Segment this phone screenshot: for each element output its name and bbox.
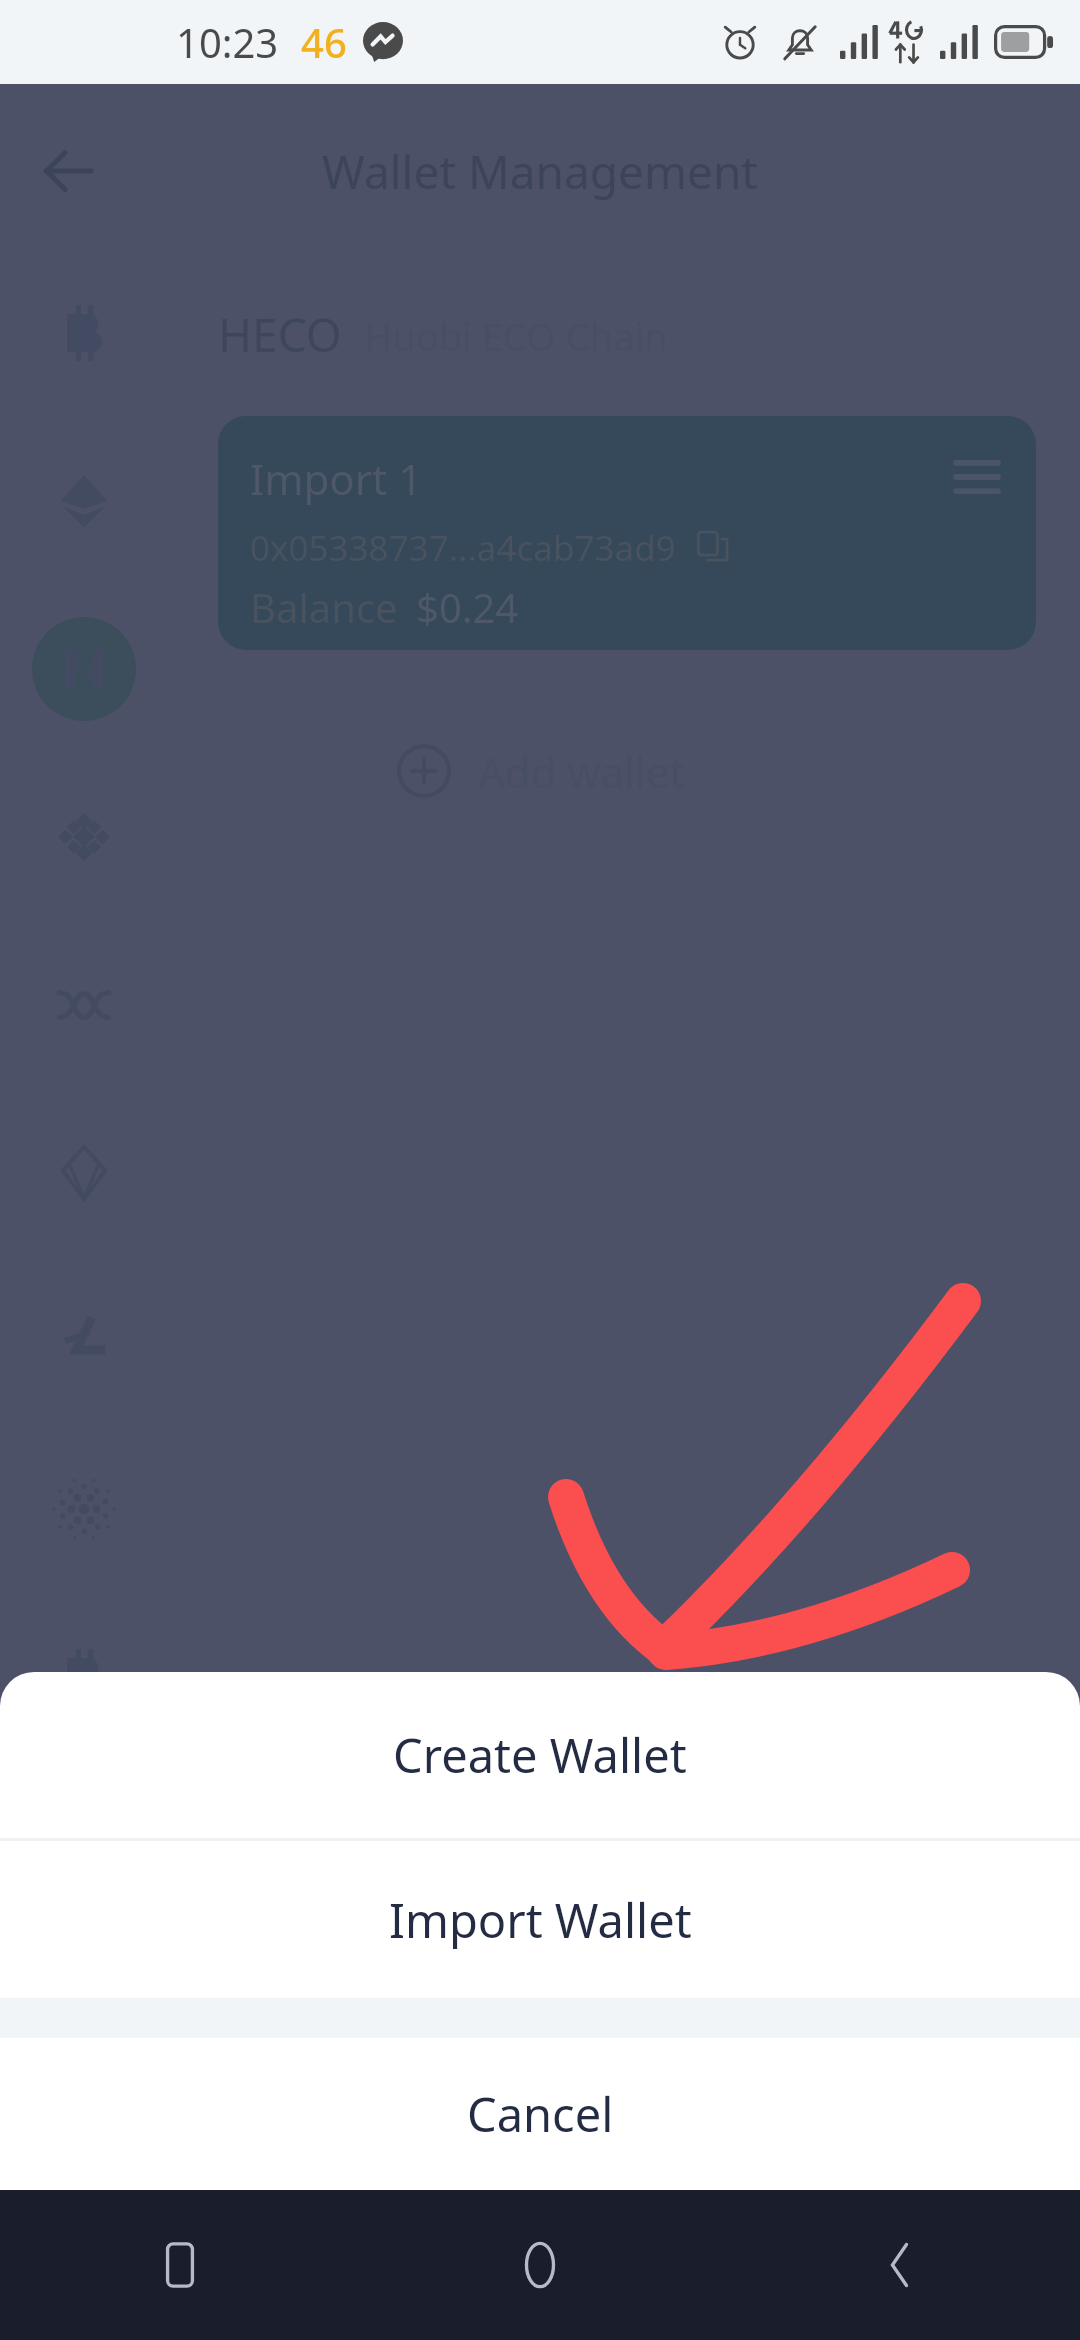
staticText: 0x05338737...a4cab73ad9 <box>250 524 676 572</box>
staticText: Wallet Management <box>0 140 1080 203</box>
staticText: 10:23 <box>176 15 279 69</box>
staticText: Import Wallet <box>389 1888 692 1952</box>
button[interactable]: Import Wallet <box>0 1841 1080 1998</box>
staticText: Cancel <box>467 2082 614 2146</box>
staticText: Balance <box>250 580 398 634</box>
button[interactable]: Create Wallet <box>0 1672 1080 1838</box>
button[interactable]: Back <box>29 132 107 210</box>
staticText: 46 <box>301 15 347 69</box>
button[interactable]: Import 1 <box>218 416 1036 650</box>
staticText: Import 1 <box>250 450 423 507</box>
staticText: HECO <box>218 303 342 366</box>
button[interactable]: Home <box>360 2190 720 2340</box>
button[interactable]: Recents <box>0 2190 360 2340</box>
button[interactable]: HECO <box>22 607 146 731</box>
button[interactable]: Wallet options <box>942 442 1012 512</box>
button[interactable]: Back <box>720 2190 1080 2340</box>
staticText: $0.24 <box>416 580 519 634</box>
button[interactable]: BTC <box>22 1615 146 1739</box>
button[interactable]: Copy address <box>692 527 734 569</box>
button[interactable]: Cancel <box>0 2038 1080 2190</box>
staticText: Create Wallet <box>393 1723 687 1787</box>
